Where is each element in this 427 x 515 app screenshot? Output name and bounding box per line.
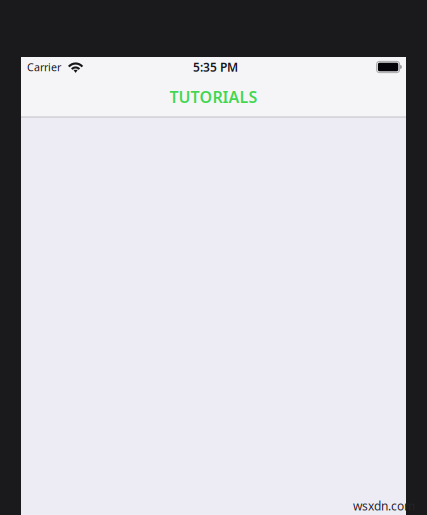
staticText: wsxdn.com <box>353 498 415 514</box>
staticText: 5:35 PM <box>193 59 238 75</box>
staticText: Carrier <box>27 60 61 74</box>
staticText: TUTORIALS <box>169 86 257 107</box>
